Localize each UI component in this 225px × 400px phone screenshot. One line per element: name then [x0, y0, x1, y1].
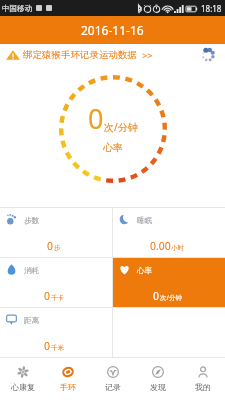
- staticText: 心率: [103, 141, 123, 154]
- staticText: 睡眠: [137, 216, 152, 225]
- staticText: 2016-11-16: [81, 22, 144, 38]
- button[interactable]: 记录: [90, 358, 135, 400]
- staticText: 千米: [51, 344, 64, 352]
- staticText: 0: [47, 239, 54, 253]
- staticText: 步数: [24, 216, 39, 225]
- button[interactable]: Loading: [199, 46, 217, 64]
- button[interactable]: 距离: [0, 308, 112, 357]
- staticText: 次/分钟: [160, 293, 182, 302]
- staticText: >>: [142, 49, 153, 61]
- staticText: 0: [44, 289, 51, 303]
- staticText: 0.00: [150, 239, 171, 253]
- staticText: 记录: [105, 382, 121, 392]
- staticText: 18:18: [201, 3, 222, 14]
- staticText: 0: [44, 339, 51, 353]
- staticText: 绑定猿猴手环记录运动数据: [23, 49, 137, 61]
- staticText: 小时: [171, 244, 184, 252]
- staticText: 中国移动: [2, 4, 32, 13]
- button[interactable]: 消耗: [0, 258, 112, 307]
- staticText: 0: [153, 289, 160, 303]
- button[interactable]: 心率: [113, 258, 225, 307]
- staticText: 心康复: [11, 382, 35, 392]
- staticText: 手环: [60, 382, 76, 392]
- button[interactable]: 步数: [0, 208, 112, 257]
- staticText: 次/分钟: [104, 120, 138, 134]
- staticText: 步: [54, 244, 61, 252]
- button[interactable]: 手环: [45, 358, 90, 400]
- staticText: 距离: [24, 316, 39, 325]
- staticText: 心率: [137, 266, 152, 275]
- button[interactable]: 发现: [135, 358, 180, 400]
- staticText: 千卡: [51, 294, 64, 302]
- staticText: 我的: [195, 382, 211, 392]
- button[interactable]: 绑定猿猴手环记录运动数据: [0, 49, 159, 61]
- button[interactable]: 睡眠: [113, 208, 225, 257]
- staticText: 发现: [150, 382, 166, 392]
- button[interactable]: 我的: [180, 358, 225, 400]
- staticText: 0: [88, 100, 104, 137]
- button[interactable]: 心康复: [0, 358, 45, 400]
- staticText: 消耗: [24, 266, 39, 275]
